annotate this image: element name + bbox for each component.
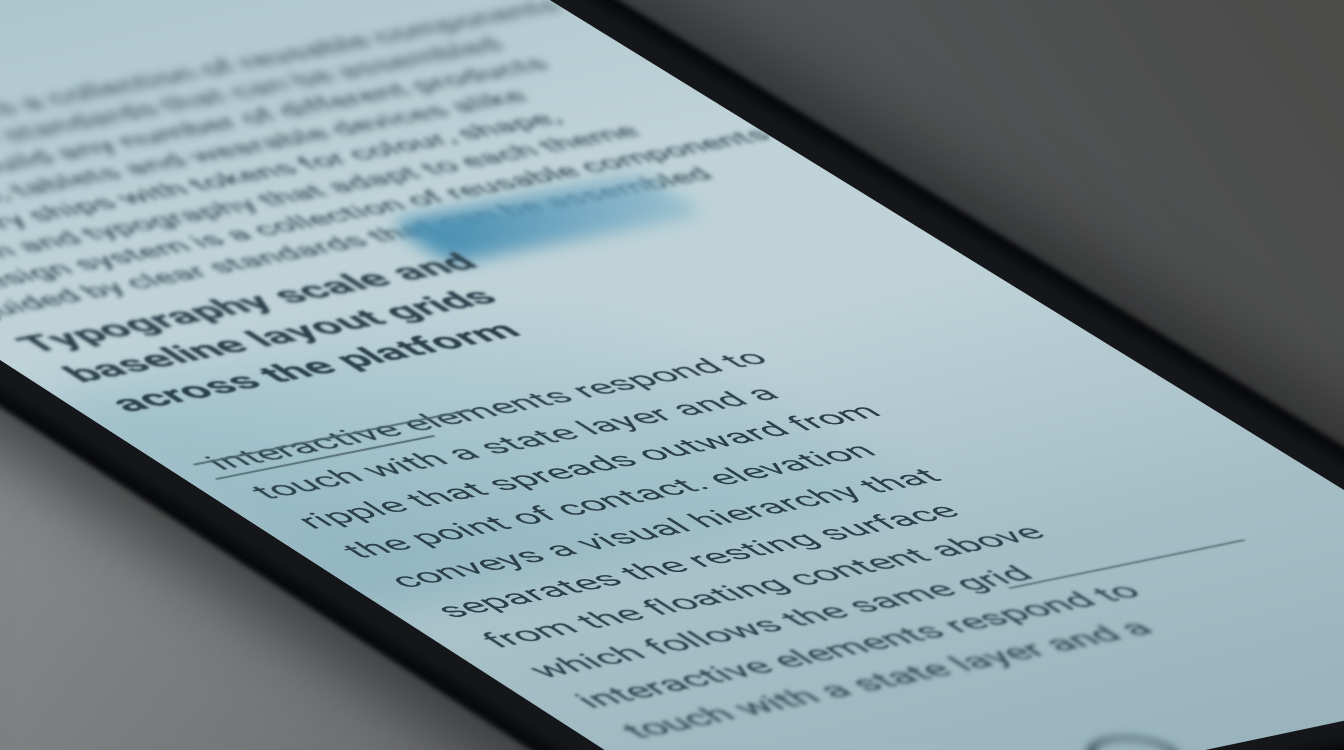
button[interactable]: Phone displaying an article reader scree…: [0, 0, 1344, 750]
